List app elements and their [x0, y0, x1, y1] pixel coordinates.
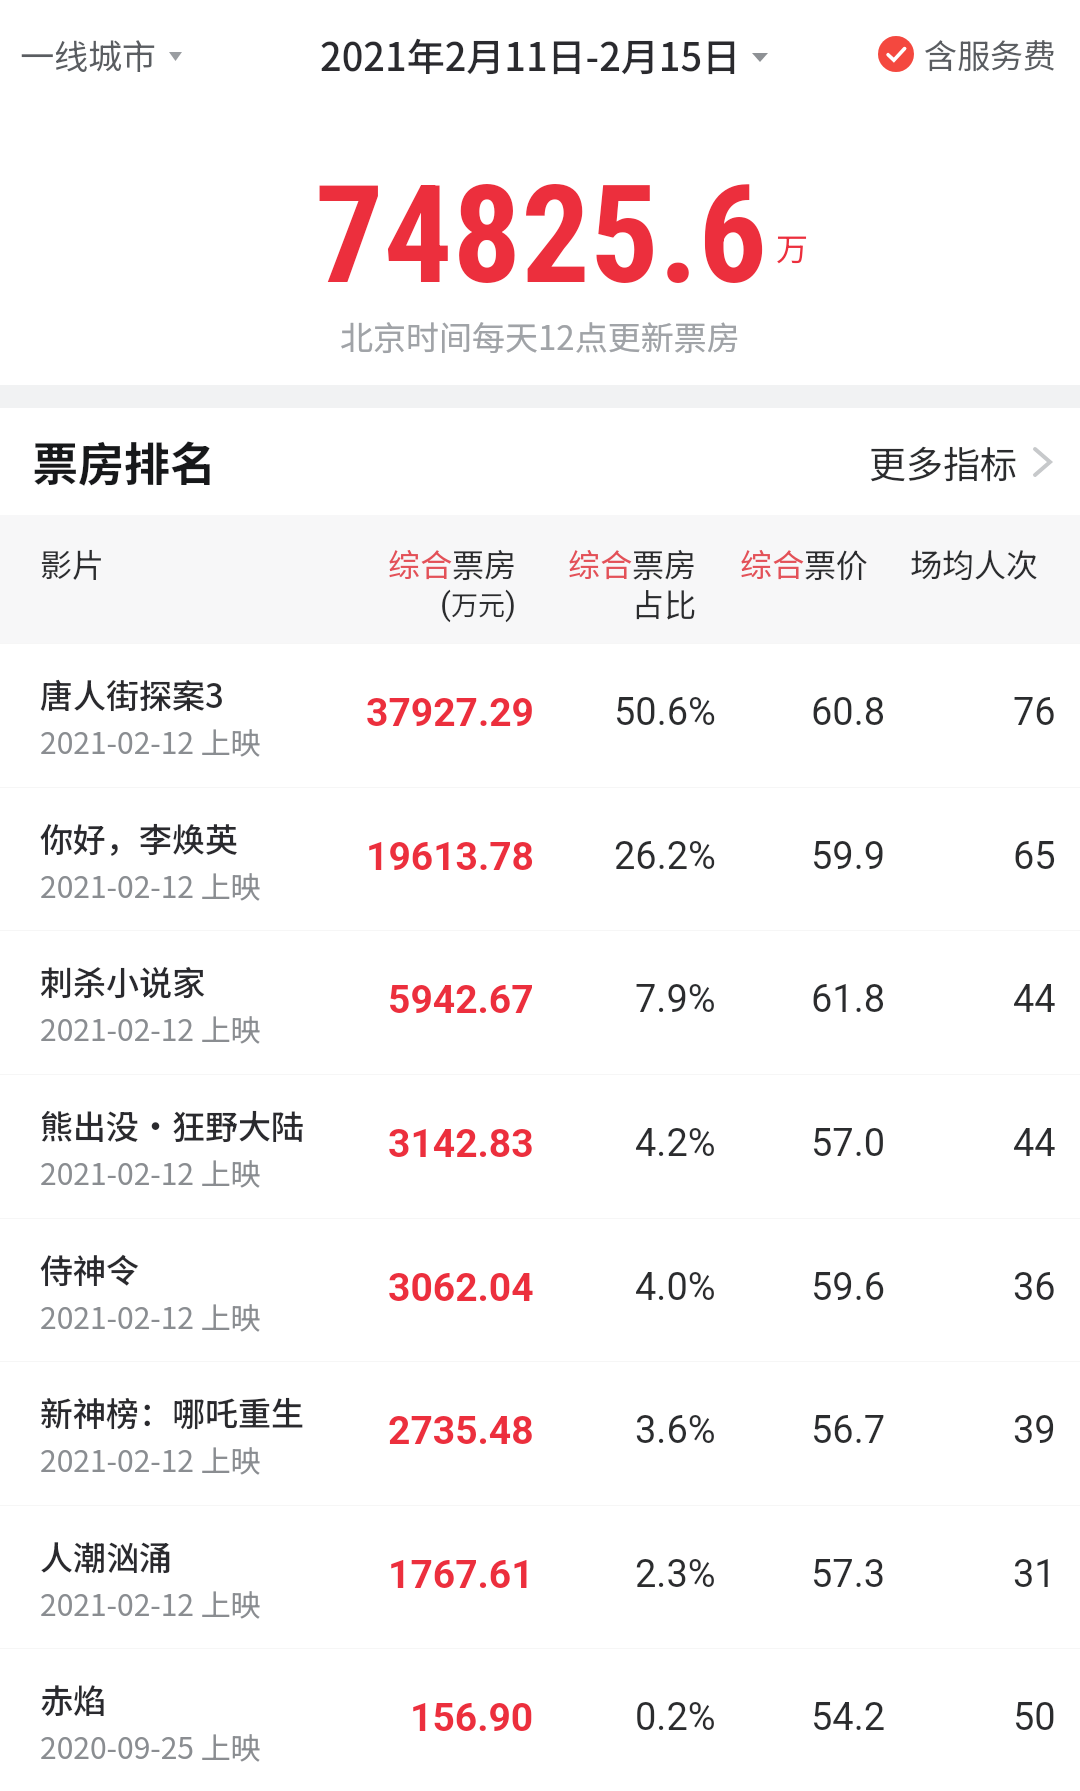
button[interactable]: 一线城市 — [0, 16, 192, 93]
staticText: 北京时间每天12点更新票房 — [340, 312, 740, 360]
staticText: 36 — [1013, 1265, 1056, 1310]
staticText: 含服务费 — [924, 30, 1056, 78]
staticText: 26.2% — [614, 834, 716, 879]
staticText: 156.90 — [410, 1695, 534, 1741]
staticText: 侍神令 — [40, 1245, 139, 1293]
button[interactable]: 新神榜：哪吒重生 — [0, 1361, 1080, 1505]
staticText: 57.3 — [811, 1552, 886, 1597]
staticText: 57.0 — [811, 1121, 886, 1166]
staticText: 2020-09-25 上映 — [40, 1724, 261, 1767]
staticText: 7.9% — [635, 977, 716, 1022]
staticText: 你好，李焕英 — [40, 814, 238, 862]
button[interactable]: 人潮汹涌 — [0, 1505, 1080, 1649]
staticText: 65 — [1013, 834, 1056, 879]
staticText: 综合票房 — [388, 540, 517, 586]
button[interactable]: 2021年2月11日-2月15日 — [320, 15, 768, 94]
staticText: 2021-02-12 上映 — [40, 1294, 261, 1337]
staticText: 39 — [1013, 1408, 1056, 1453]
button[interactable]: 刺杀小说家 — [0, 930, 1080, 1074]
staticText: 2021-02-12 上映 — [40, 863, 261, 906]
staticText: 熊出没·狂野大陆 — [40, 1101, 304, 1149]
staticText: 1767.61 — [388, 1552, 534, 1598]
staticText: 人潮汹涌 — [40, 1532, 172, 1580]
staticText: 更多指标 — [869, 435, 1017, 489]
staticText: 3142.83 — [388, 1121, 534, 1167]
staticText: 54.2 — [811, 1695, 886, 1740]
staticText: 2735.48 — [388, 1408, 534, 1454]
staticText: 一线城市 — [20, 30, 156, 79]
staticText: 44 — [1013, 977, 1056, 1022]
staticText: 万 — [776, 224, 809, 270]
button[interactable]: 更多指标 — [851, 415, 1080, 509]
staticText: 3.6% — [635, 1408, 716, 1453]
staticText: 44 — [1013, 1121, 1056, 1166]
staticText: 0.2% — [635, 1695, 716, 1740]
staticText: 赤焰 — [40, 1675, 106, 1723]
staticText: 2021-02-12 上映 — [40, 1006, 261, 1049]
button[interactable]: 含服务费 已选中 — [866, 16, 1080, 92]
staticText: 59.9 — [811, 834, 886, 879]
staticText: 综合票价 — [740, 540, 869, 586]
staticText: 影片 — [40, 540, 105, 586]
staticText: 50.6% — [614, 690, 716, 735]
button[interactable]: 你好，李焕英 — [0, 787, 1080, 931]
other: 含服务费 已选中 — [878, 36, 914, 72]
staticText: 综合票房 — [568, 540, 697, 586]
staticText: 唐人街探案3 — [40, 670, 224, 718]
staticText: 2021年2月11日-2月15日 — [320, 27, 741, 82]
staticText: 59.6 — [811, 1265, 886, 1310]
staticText: 占比 — [632, 580, 697, 626]
staticText: 5942.67 — [388, 977, 534, 1023]
staticText: 票房排名 — [32, 428, 216, 495]
staticText: 60.8 — [811, 690, 886, 735]
staticText: 刺杀小说家 — [40, 957, 205, 1005]
staticText: 74825.6 — [315, 156, 767, 315]
staticText: 2021-02-12 上映 — [40, 719, 261, 762]
staticText: 2021-02-12 上映 — [40, 1581, 261, 1624]
button[interactable]: 侍神令 — [0, 1218, 1080, 1362]
staticText: 50 — [1013, 1695, 1056, 1740]
staticText: 19613.78 — [366, 834, 534, 880]
staticText: 新神榜：哪吒重生 — [40, 1388, 304, 1436]
staticText: 场均人次 — [910, 540, 1039, 586]
staticText: 76 — [1013, 690, 1056, 735]
staticText: 2021-02-12 上映 — [40, 1150, 261, 1193]
staticText: 4.2% — [635, 1121, 716, 1166]
staticText: (万元) — [440, 584, 517, 623]
staticText: 2.3% — [635, 1552, 716, 1597]
staticText: 37927.29 — [366, 690, 534, 736]
button[interactable]: 熊出没·狂野大陆 — [0, 1074, 1080, 1218]
button[interactable]: 赤焰 — [0, 1648, 1080, 1791]
button[interactable]: 唐人街探案3 — [0, 643, 1080, 787]
staticText: 61.8 — [811, 977, 886, 1022]
staticText: 4.0% — [635, 1265, 716, 1310]
staticText: 56.7 — [811, 1408, 886, 1453]
staticText: 2021-02-12 上映 — [40, 1437, 261, 1480]
staticText: 3062.04 — [388, 1265, 534, 1311]
staticText: 31 — [1013, 1552, 1056, 1597]
